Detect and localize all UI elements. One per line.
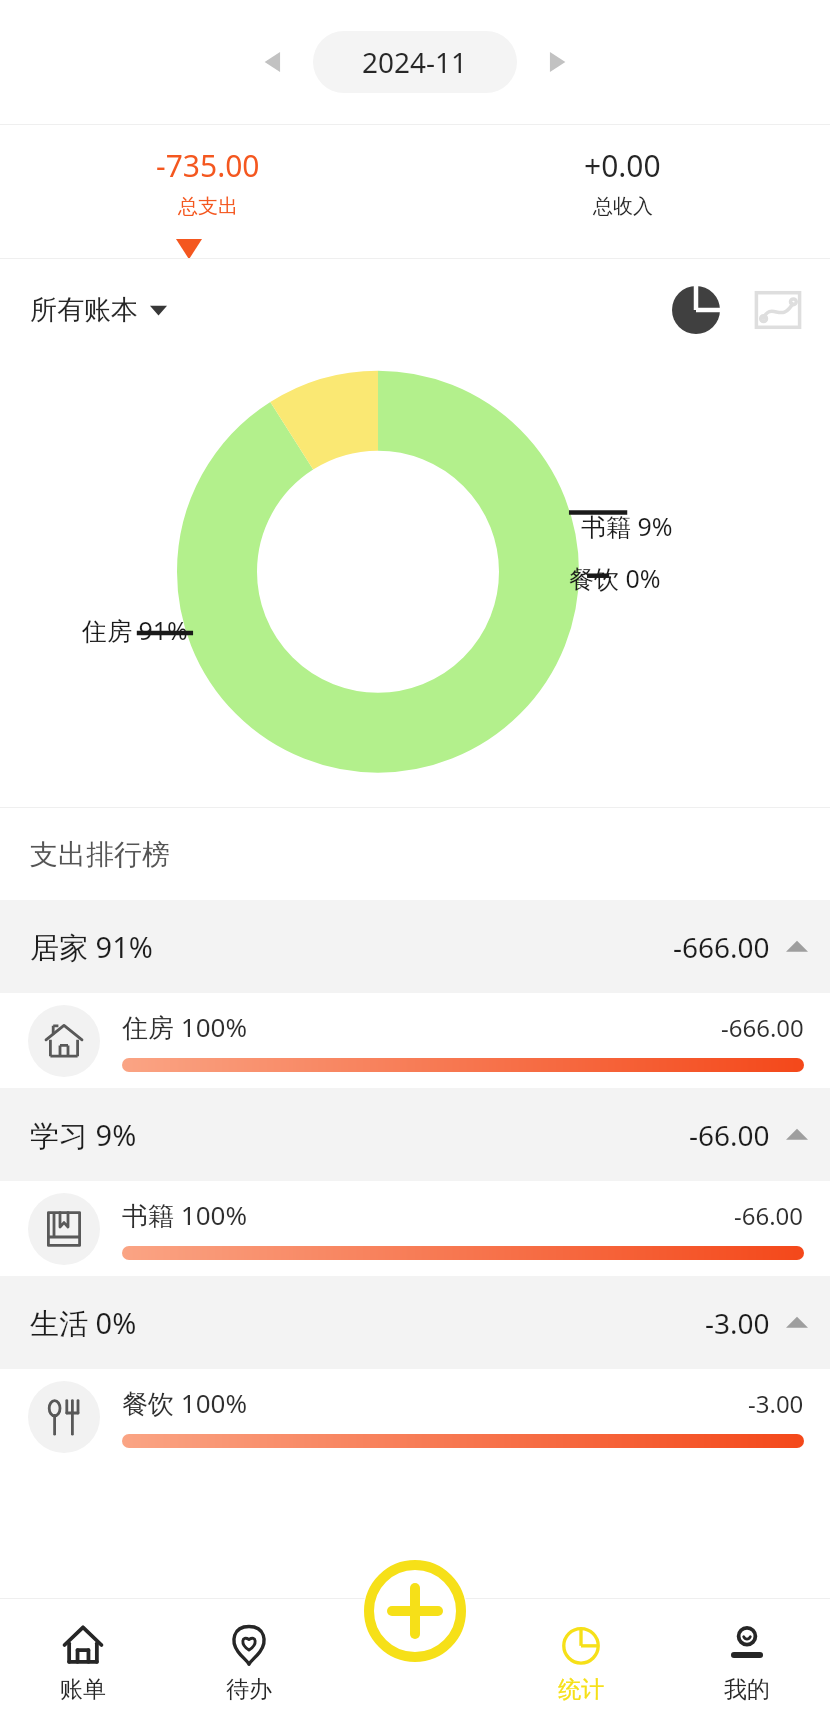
staticText: -735.00 <box>156 145 260 186</box>
staticText: -66.00 <box>689 1116 770 1154</box>
staticText: 账单 <box>60 1675 106 1704</box>
button[interactable]: 待办 <box>166 1598 332 1730</box>
button[interactable]: Line chart view <box>748 280 808 340</box>
staticText: 住房 100% <box>122 1009 247 1045</box>
button[interactable]: 住房 100% <box>0 993 830 1088</box>
staticText: -3.00 <box>705 1304 770 1342</box>
button[interactable]: Next month <box>531 36 583 88</box>
staticText: 生活 0% <box>30 1303 137 1343</box>
staticText: 2024-11 <box>362 43 468 81</box>
button[interactable]: Pie chart view <box>666 280 726 340</box>
button[interactable]: 2024-11 <box>313 31 517 93</box>
staticText: -666.00 <box>721 1011 804 1044</box>
staticText: -666.00 <box>673 928 770 966</box>
button[interactable]: 账单 <box>0 1598 166 1730</box>
staticText: 支出排行榜 <box>30 837 170 872</box>
staticText: 居家 91% <box>30 927 153 967</box>
button[interactable]: 书籍 100% <box>0 1181 830 1276</box>
button[interactable]: 所有账本 <box>30 293 167 327</box>
staticText: 所有账本 <box>30 293 138 327</box>
staticText: 餐饮 100% <box>122 1385 247 1421</box>
staticText: -66.00 <box>734 1199 804 1232</box>
staticText: 书籍 9% <box>581 509 673 543</box>
staticText: 总收入 <box>593 194 653 219</box>
staticText: 总支出 <box>178 194 238 219</box>
button[interactable]: Add record <box>363 1559 467 1663</box>
staticText: 住房 91% <box>82 613 188 647</box>
button[interactable]: 生活 0% <box>0 1276 830 1369</box>
staticText: 待办 <box>226 1675 272 1704</box>
button[interactable]: 餐饮 100% <box>0 1369 830 1464</box>
staticText: -3.00 <box>748 1387 804 1420</box>
staticText: 餐饮 0% <box>569 561 661 595</box>
staticText: +0.00 <box>584 145 661 186</box>
button[interactable]: 学习 9% <box>0 1088 830 1181</box>
button[interactable]: 我的 <box>664 1598 830 1730</box>
staticText: 书籍 100% <box>122 1197 247 1233</box>
button[interactable]: 居家 91% <box>0 900 830 993</box>
staticText: 我的 <box>724 1675 770 1704</box>
staticText: 学习 9% <box>30 1115 137 1155</box>
staticText: 统计 <box>558 1675 604 1704</box>
button[interactable]: 统计 <box>498 1598 664 1730</box>
button[interactable]: Previous month <box>247 36 299 88</box>
